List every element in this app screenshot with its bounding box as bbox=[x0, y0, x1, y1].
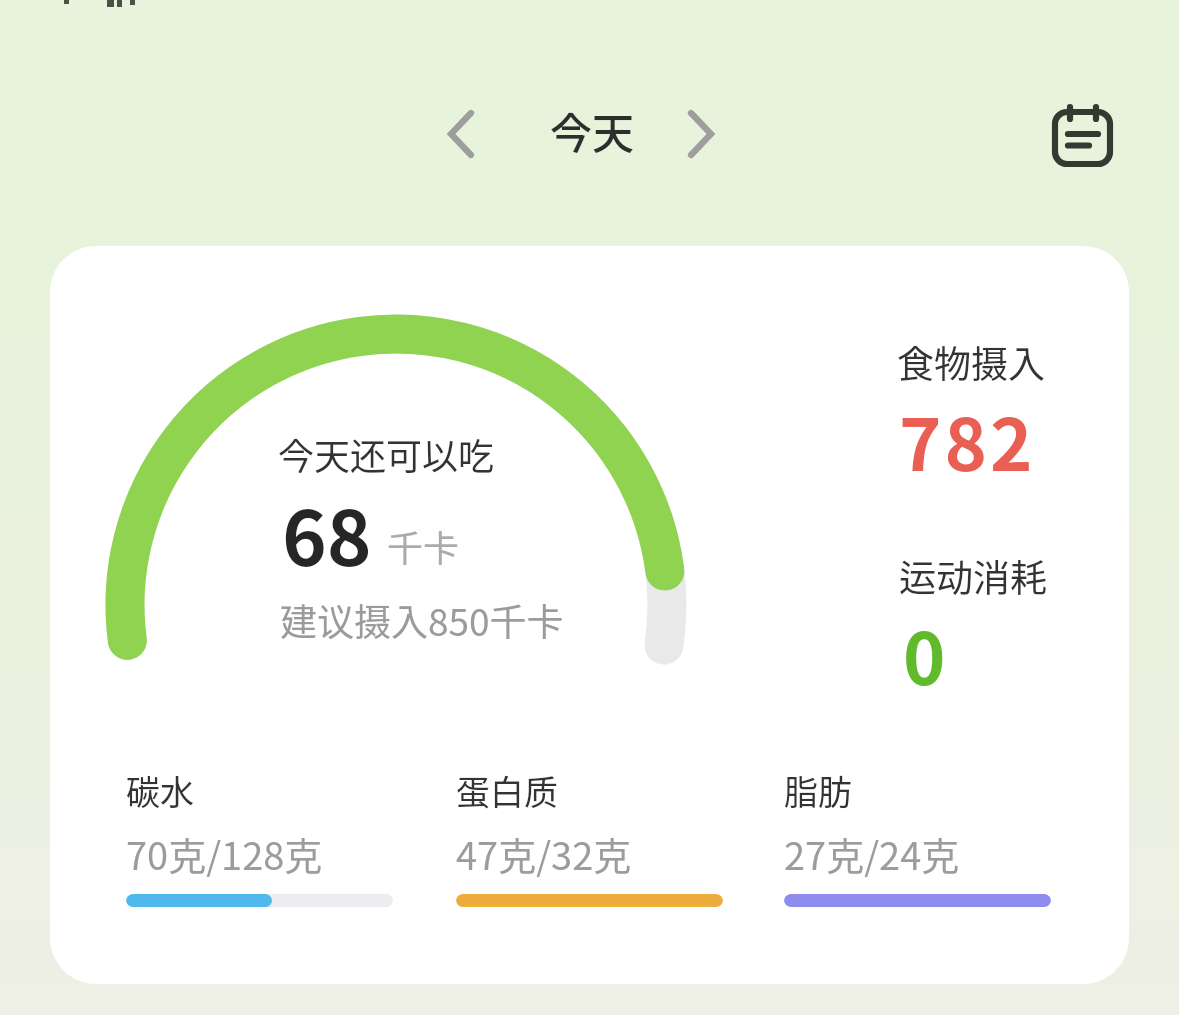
staticText: 68 bbox=[282, 478, 372, 588]
staticText: 0 bbox=[903, 601, 946, 705]
staticText: 47克/32克 bbox=[456, 826, 632, 881]
button[interactable] bbox=[436, 104, 486, 164]
staticText: 碳水 bbox=[126, 766, 194, 815]
staticText: 脂肪 bbox=[784, 766, 852, 815]
staticText: 27克/24克 bbox=[784, 826, 960, 881]
staticText: 食物摄入 bbox=[897, 335, 1045, 389]
staticText: 今天 bbox=[550, 100, 635, 161]
staticText: 蛋白质 bbox=[456, 766, 558, 815]
button[interactable] bbox=[1048, 100, 1114, 170]
button[interactable] bbox=[676, 104, 726, 164]
staticText: 千卡 bbox=[387, 520, 460, 572]
staticText: 今天还可以吃 bbox=[278, 428, 495, 480]
staticText: 运动消耗 bbox=[899, 549, 1047, 603]
staticText: 782 bbox=[899, 387, 1036, 491]
staticText: 70克/128克 bbox=[126, 826, 323, 881]
staticText: 建议摄入850千卡 bbox=[280, 593, 564, 647]
button[interactable]: 今天 bbox=[502, 90, 682, 170]
